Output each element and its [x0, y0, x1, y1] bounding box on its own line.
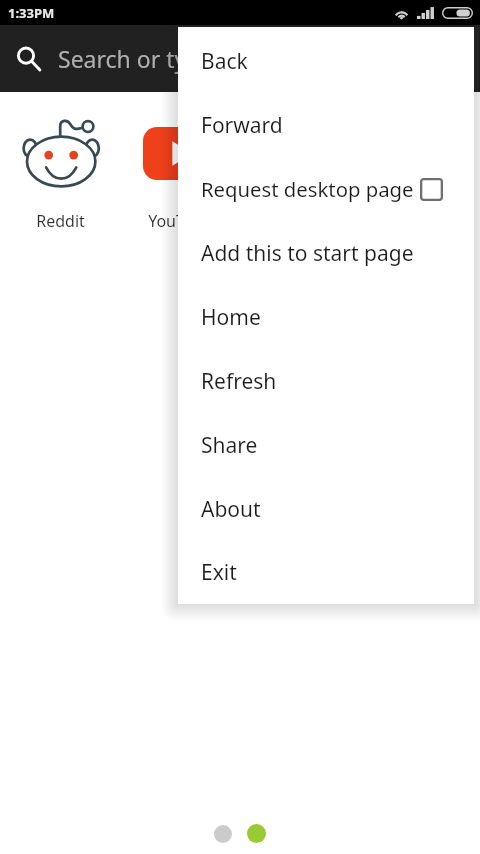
button[interactable]: YouTube [120, 92, 240, 232]
button[interactable]: Twitter [360, 92, 480, 232]
staticText: Share [201, 431, 258, 460]
button[interactable]: Search [0, 25, 58, 92]
button[interactable]: Back [178, 29, 474, 93]
staticText: Forward [201, 111, 283, 140]
button[interactable]: Reddit [0, 92, 120, 232]
staticText: Request desktop page [201, 175, 414, 203]
staticText: Back [201, 47, 248, 76]
button[interactable]: Refresh [178, 349, 474, 413]
button[interactable]: About [178, 477, 474, 541]
button[interactable]: Share [178, 413, 474, 477]
staticText: Refresh [201, 367, 277, 396]
button[interactable]: Request desktop page [178, 157, 474, 221]
button[interactable]: Home [178, 285, 474, 349]
button[interactable]: Forward [178, 93, 474, 157]
staticText: 1:33PM [8, 4, 55, 22]
staticText: About [201, 495, 261, 524]
button[interactable]: Add this to start page [178, 221, 474, 285]
button[interactable]: Facebook [240, 92, 360, 232]
button[interactable]: Page 2, selected [247, 824, 266, 843]
button[interactable]: Page 1 [214, 825, 232, 843]
staticText: Home [201, 303, 261, 332]
staticText: Reddit [36, 210, 85, 232]
staticText: Search or type web address [58, 43, 356, 74]
staticText: Add this to start page [201, 239, 414, 268]
staticText: YouTube [148, 210, 213, 232]
staticText: Exit [201, 558, 237, 587]
button[interactable]: Exit [178, 541, 474, 604]
